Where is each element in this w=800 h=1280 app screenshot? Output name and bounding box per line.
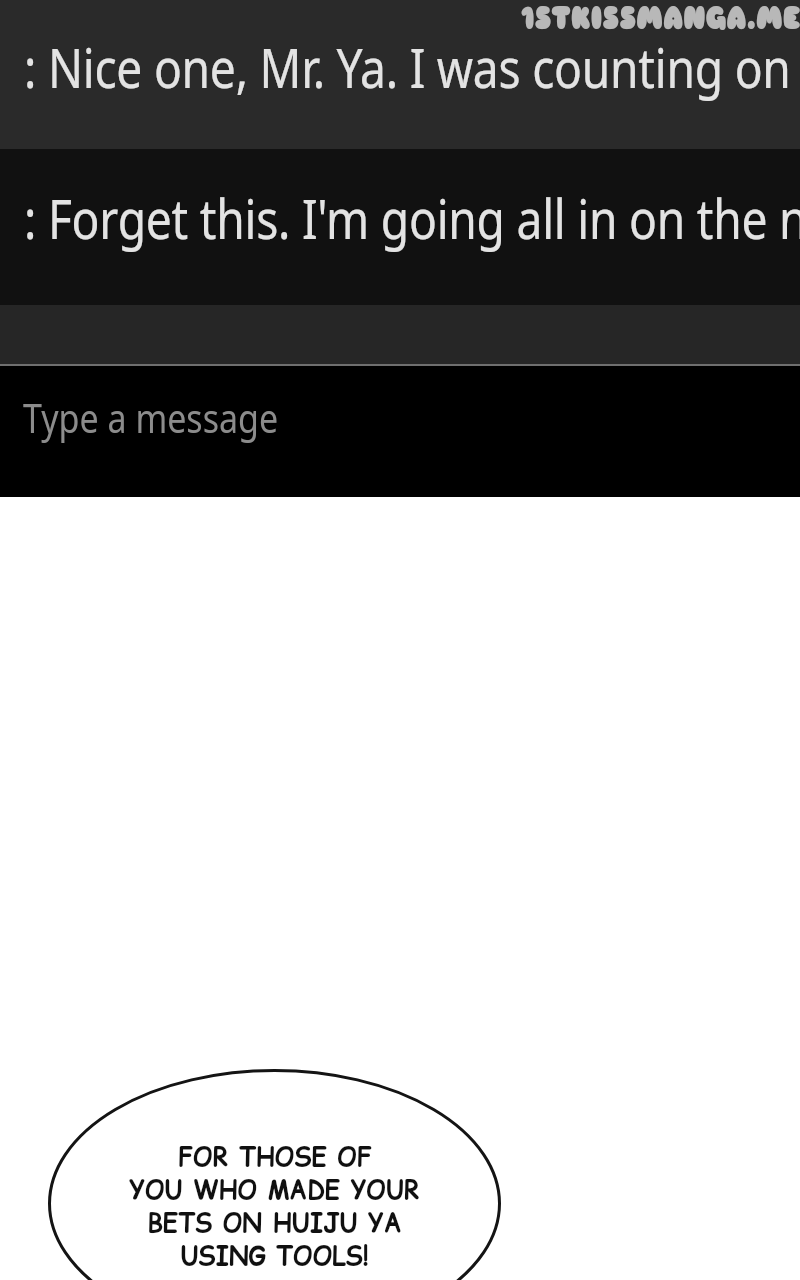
staticText: USING TOOLS! xyxy=(180,1236,369,1273)
button[interactable]: : Nice one, Mr. Ya. I was counting on yo… xyxy=(0,0,800,149)
button[interactable]: Type a message xyxy=(0,366,800,497)
button[interactable]: : Forget this. I'm going all in on the n… xyxy=(0,149,800,305)
staticText: Type a message xyxy=(23,390,279,445)
staticText: YOU WHO MADE YOUR xyxy=(129,1170,420,1207)
staticText: : Nice one, Mr. Ya. I was counting on yo… xyxy=(24,29,800,105)
staticText: : Forget this. I'm going all in on the n… xyxy=(24,180,800,256)
staticText: FOR THOSE OF xyxy=(178,1137,372,1174)
staticText: BETS ON HUIJU YA xyxy=(147,1203,402,1240)
staticText: 1STKISSMANGA.ME xyxy=(521,0,800,38)
